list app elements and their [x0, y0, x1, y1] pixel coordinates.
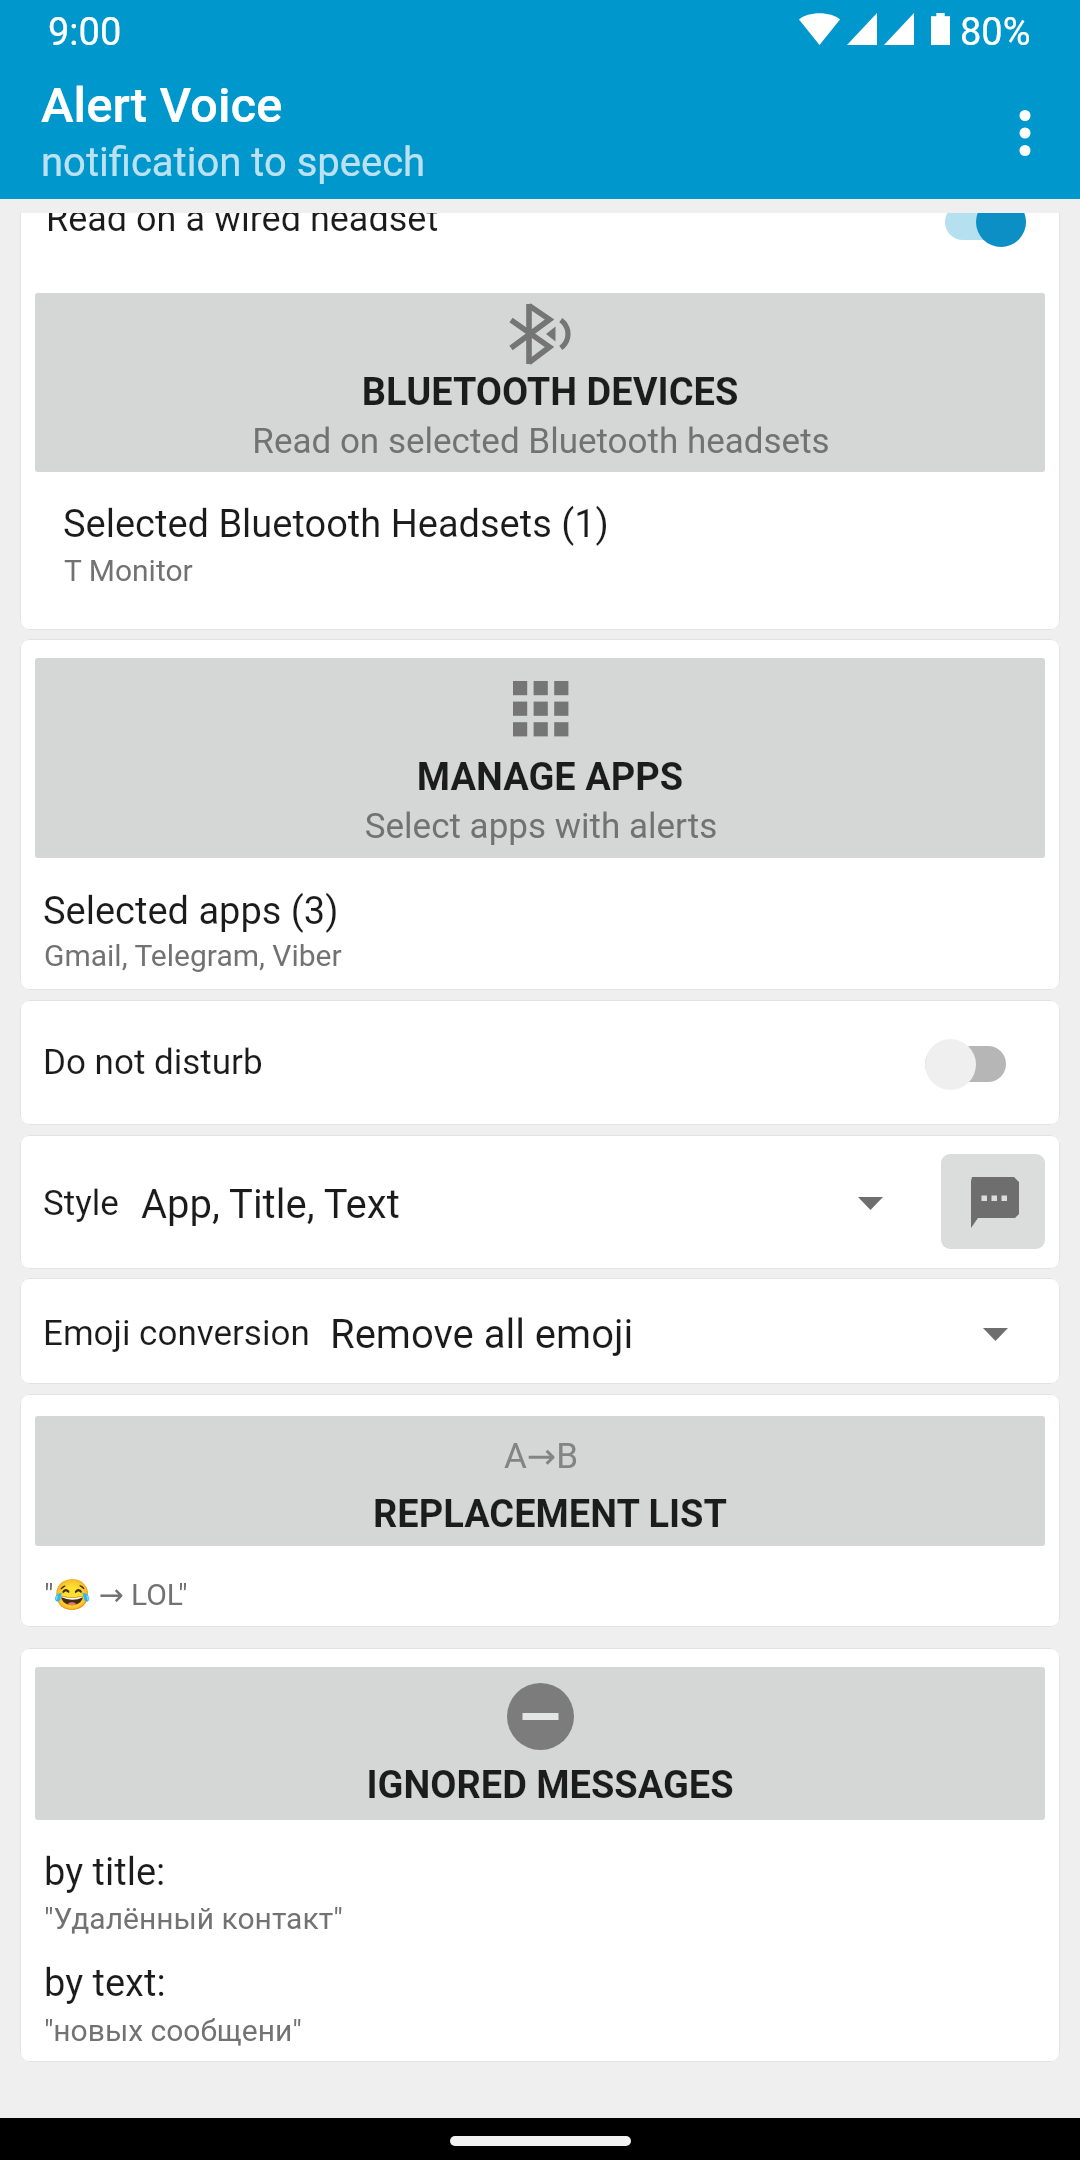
staticText: "новых сообщени" — [44, 2013, 302, 2048]
button[interactable]: Do not disturb — [20, 1000, 1060, 1125]
button[interactable]: MANAGE APPS — [35, 658, 1045, 858]
staticText: App, Title, Text — [141, 1181, 400, 1228]
button[interactable]: Read on a wired headset — [20, 213, 1060, 630]
staticText: T Monitor — [64, 553, 193, 588]
staticText: Read on selected Bluetooth headsets — [141, 421, 941, 462]
staticText: notification to speech — [41, 139, 426, 186]
staticText: 80% — [960, 10, 1031, 55]
button[interactable]: IGNORED MESSAGES — [35, 1667, 1045, 1820]
staticText: MANAGE APPS — [150, 755, 950, 800]
staticText: "Удалённый контакт" — [44, 1901, 343, 1936]
staticText: IGNORED MESSAGES — [150, 1763, 950, 1808]
staticText: Do not disturb — [43, 1042, 263, 1083]
staticText: Emoji conversion — [43, 1313, 310, 1354]
button[interactable]: BLUETOOTH DEVICES — [35, 293, 1045, 472]
staticText: Remove all emoji — [330, 1311, 634, 1358]
button[interactable]: Preview style — [941, 1154, 1045, 1249]
button[interactable]: A→B — [35, 1416, 1045, 1546]
staticText: Gmail, Telegram, Viber — [44, 938, 342, 973]
staticText: A→B — [141, 1436, 941, 1477]
staticText: Selected Bluetooth Headsets (1) — [63, 502, 609, 547]
staticText: Select apps with alerts — [141, 806, 941, 847]
staticText: "😂 → LOL" — [44, 1577, 188, 1612]
button[interactable]: A→B — [20, 1394, 1060, 1627]
button[interactable]: Style — [20, 1135, 1060, 1269]
staticText: Alert Voice — [41, 77, 283, 134]
staticText: REPLACEMENT LIST — [150, 1492, 950, 1537]
staticText: Read on a wired headset — [46, 213, 439, 240]
button[interactable]: Do not disturb toggle — [925, 1036, 1006, 1092]
staticText: 9:00 — [48, 10, 122, 55]
staticText: by text: — [44, 1961, 166, 2006]
button[interactable]: MANAGE APPS — [20, 639, 1060, 990]
button[interactable]: More options — [990, 98, 1060, 168]
staticText: Selected apps (3) — [43, 889, 339, 934]
button[interactable]: IGNORED MESSAGES — [20, 1648, 1060, 2062]
staticText: BLUETOOTH DEVICES — [150, 370, 950, 415]
button[interactable]: Emoji conversion — [20, 1278, 1060, 1384]
staticText: Style — [43, 1183, 119, 1224]
staticText: by title: — [44, 1850, 166, 1895]
